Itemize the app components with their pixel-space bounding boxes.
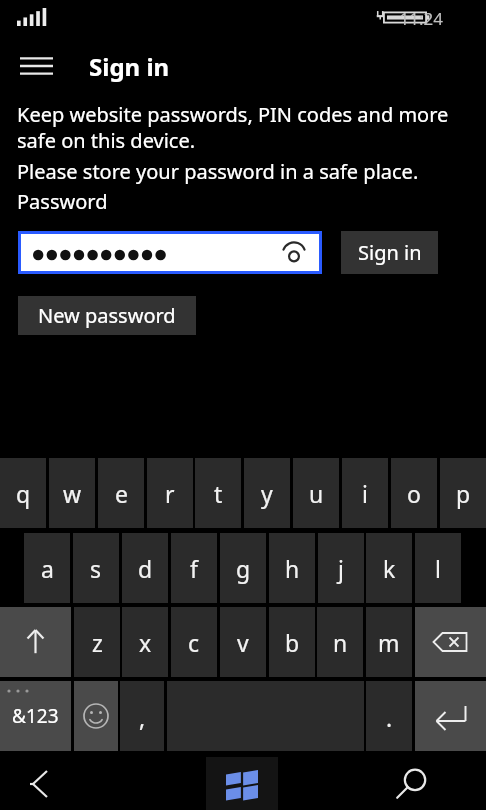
staticText: j xyxy=(338,553,344,584)
button[interactable]: Shift xyxy=(0,607,71,677)
staticText: n xyxy=(333,627,348,658)
staticText: New password xyxy=(38,302,176,329)
button[interactable]: r xyxy=(147,458,193,528)
button[interactable]: j xyxy=(318,533,364,603)
staticText: d xyxy=(138,553,153,584)
button[interactable]: a xyxy=(24,533,70,603)
staticText: b xyxy=(285,627,300,658)
staticText: q xyxy=(16,478,31,509)
staticText: s xyxy=(90,553,102,584)
button[interactable]: z xyxy=(74,607,120,677)
staticText: i xyxy=(362,478,368,509)
button[interactable]: Show password xyxy=(21,234,319,271)
staticText: r xyxy=(165,478,175,509)
staticText: h xyxy=(285,553,300,584)
button[interactable]: Sign in xyxy=(341,231,438,274)
button[interactable]: w xyxy=(49,458,95,528)
staticText: , xyxy=(139,702,146,733)
staticText: p xyxy=(456,478,471,509)
button[interactable]: q xyxy=(0,458,46,528)
button[interactable]: x xyxy=(122,607,168,677)
staticText: z xyxy=(92,627,103,658)
button[interactable]: Backspace xyxy=(415,607,486,677)
button[interactable]: g xyxy=(220,533,266,603)
button[interactable]: , xyxy=(120,681,164,751)
button[interactable]: h xyxy=(269,533,315,603)
button[interactable]: t xyxy=(195,458,241,528)
button[interactable]: Menu xyxy=(8,44,66,88)
button[interactable]: . xyxy=(366,681,412,751)
button[interactable]: i xyxy=(342,458,388,528)
staticText: Sign in xyxy=(358,239,422,266)
button[interactable]: o xyxy=(391,458,437,528)
button[interactable]: m xyxy=(366,607,412,677)
button[interactable]: New password xyxy=(18,296,196,335)
button[interactable]: u xyxy=(293,458,339,528)
staticText: l xyxy=(435,553,441,584)
staticText: . xyxy=(386,702,393,733)
staticText: f xyxy=(190,553,198,584)
button[interactable]: f xyxy=(171,533,217,603)
button[interactable]: Enter xyxy=(415,681,486,751)
button[interactable]: d xyxy=(122,533,168,603)
staticText: m xyxy=(378,627,400,658)
button[interactable]: y xyxy=(244,458,290,528)
button[interactable]: Search xyxy=(340,757,485,810)
staticText: y xyxy=(261,478,273,509)
staticText: x xyxy=(139,627,152,658)
staticText: g xyxy=(236,553,251,584)
button[interactable]: Start xyxy=(206,757,278,810)
button[interactable]: p xyxy=(440,458,486,528)
staticText: e xyxy=(115,478,128,509)
button[interactable]: b xyxy=(269,607,315,677)
staticText: Please store your password in a safe pla… xyxy=(17,158,419,185)
button[interactable]: k xyxy=(366,533,412,603)
staticText: Sign in xyxy=(89,50,170,83)
staticText: a xyxy=(41,553,54,584)
button[interactable]: Emoji xyxy=(74,681,118,751)
staticText: c xyxy=(188,627,200,658)
button[interactable]: n xyxy=(317,607,363,677)
staticText: Password xyxy=(17,188,108,215)
staticText: t xyxy=(214,478,223,509)
staticText: Keep website passwords, PIN codes and mo… xyxy=(17,101,449,154)
staticText: 11:24 xyxy=(383,7,443,30)
button[interactable]: l xyxy=(415,533,461,603)
button[interactable]: s xyxy=(73,533,119,603)
staticText: &123 xyxy=(12,703,59,729)
button[interactable]: e xyxy=(98,458,144,528)
button[interactable]: c xyxy=(171,607,217,677)
staticText: v xyxy=(237,627,249,658)
button[interactable]: Show password xyxy=(277,236,311,270)
staticText: o xyxy=(407,478,421,509)
staticText: u xyxy=(309,478,324,509)
button[interactable]: &123 xyxy=(0,681,71,751)
button[interactable]: v xyxy=(220,607,266,677)
staticText: w xyxy=(63,478,82,509)
staticText: k xyxy=(383,553,396,584)
